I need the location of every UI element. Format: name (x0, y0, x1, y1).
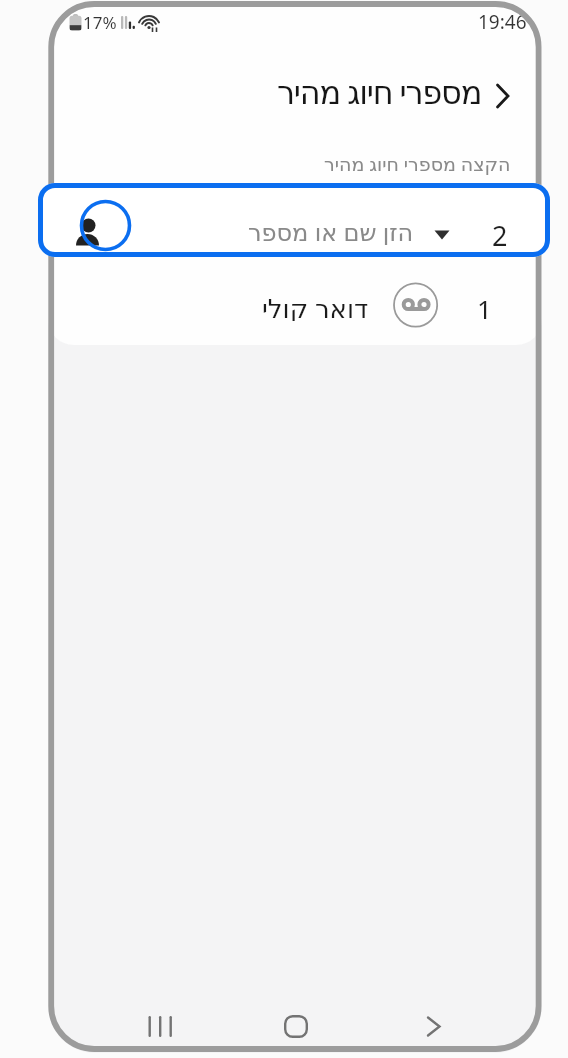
button[interactable] (147, 1015, 173, 1039)
button[interactable] (48, 263, 542, 345)
button[interactable] (48, 187, 542, 257)
button[interactable] (490, 82, 514, 110)
button[interactable] (38, 183, 550, 257)
staticText: דואר קולי (262, 290, 369, 321)
button[interactable] (284, 1015, 308, 1039)
staticText: 17% (83, 11, 117, 34)
staticText: הקצה מספרי חיוג מהיר (324, 151, 511, 177)
button[interactable]: מספרי חיוג מהיר (148, 70, 482, 114)
button[interactable] (425, 1015, 443, 1039)
staticText: הזן שם או מספר (248, 215, 414, 245)
staticText: מספרי חיוג מהיר (277, 70, 482, 114)
staticText: 2 (492, 217, 508, 247)
staticText: 1 (477, 291, 492, 321)
staticText: 19:46 (478, 9, 527, 33)
